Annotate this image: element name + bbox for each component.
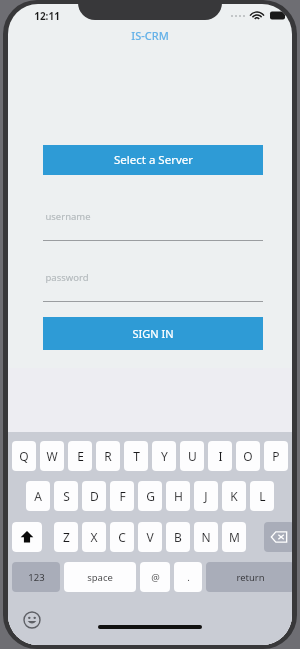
staticText: Q [19, 448, 29, 464]
button[interactable]: Z [54, 522, 78, 552]
staticText: A [34, 488, 42, 504]
button[interactable]: password [43, 268, 263, 302]
button[interactable]: G [138, 481, 162, 511]
staticText: L [259, 488, 266, 504]
staticText: O [243, 448, 253, 464]
staticText: P [272, 448, 280, 464]
button[interactable]: J [194, 481, 218, 511]
button[interactable]: F [110, 481, 134, 511]
button[interactable]: space [64, 562, 136, 592]
staticText: 12:11 [34, 9, 60, 23]
staticText: W [46, 448, 58, 464]
button[interactable]: M [222, 522, 246, 552]
button[interactable]: SIGN IN [43, 317, 263, 350]
button[interactable]: K [222, 481, 246, 511]
staticText: D [90, 488, 99, 504]
staticText: T [133, 448, 140, 464]
staticText: I [218, 448, 223, 464]
button[interactable]: O [236, 441, 260, 471]
button[interactable]: R [96, 441, 120, 471]
staticText: Z [63, 529, 70, 545]
staticText: . [187, 571, 190, 584]
staticText: V [146, 529, 154, 545]
button[interactable]: C [110, 522, 134, 552]
staticText: S [63, 488, 70, 504]
staticText: Y [161, 448, 168, 464]
button[interactable]: X [82, 522, 106, 552]
staticText: J [204, 488, 208, 504]
button[interactable]: Select a Server [43, 145, 263, 175]
staticText: 123 [28, 571, 45, 584]
button[interactable]: E [68, 441, 92, 471]
button[interactable]: Q [12, 441, 36, 471]
staticText: H [174, 488, 183, 504]
staticText: X [90, 529, 98, 545]
staticText: Select a Server [114, 152, 193, 168]
button[interactable]: H [166, 481, 190, 511]
staticText: SIGN IN [132, 326, 174, 341]
button[interactable]: Emoji [22, 610, 42, 630]
staticText: C [118, 529, 126, 545]
staticText: E [77, 448, 84, 464]
staticText: IS-CRM [131, 28, 169, 43]
button[interactable]: Backspace [264, 522, 292, 552]
button[interactable]: L [250, 481, 274, 511]
button[interactable]: N [194, 522, 218, 552]
button[interactable]: U [180, 441, 204, 471]
button[interactable]: A [26, 481, 50, 511]
staticText: R [104, 448, 112, 464]
button[interactable]: . [174, 562, 202, 592]
button[interactable]: Y [152, 441, 176, 471]
button[interactable]: D [82, 481, 106, 511]
button[interactable]: @ [140, 562, 170, 592]
staticText: @ [151, 571, 160, 584]
staticText: B [174, 529, 182, 545]
button[interactable]: V [138, 522, 162, 552]
staticText: M [229, 529, 240, 545]
staticText: U [188, 448, 197, 464]
button[interactable]: T [124, 441, 148, 471]
staticText: K [230, 488, 238, 504]
staticText: password [45, 271, 89, 284]
button[interactable]: B [166, 522, 190, 552]
button[interactable]: Shift [12, 522, 42, 552]
button[interactable]: I [208, 441, 232, 471]
staticText: N [201, 529, 211, 545]
staticText: username [45, 210, 91, 223]
button[interactable]: 123 [12, 562, 60, 592]
button[interactable]: return [206, 562, 292, 592]
button[interactable]: P [264, 441, 288, 471]
button[interactable]: W [40, 441, 64, 471]
button[interactable]: S [54, 481, 78, 511]
button[interactable]: username [43, 207, 263, 241]
staticText: return [236, 571, 265, 584]
staticText: space [87, 571, 113, 584]
staticText: G [146, 488, 155, 504]
staticText: F [119, 488, 126, 504]
